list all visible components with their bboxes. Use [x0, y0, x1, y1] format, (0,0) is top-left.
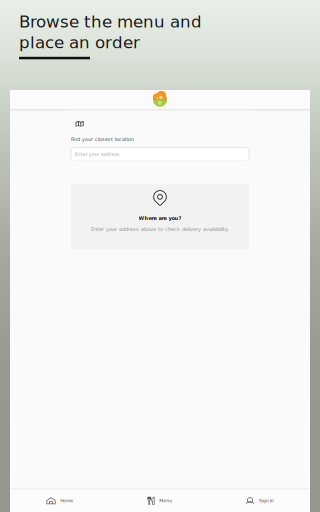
button[interactable]: Sign In	[210, 489, 310, 512]
staticText: Browse the menu and	[19, 12, 202, 31]
staticText: Menu	[159, 498, 172, 503]
staticText: Enter your address	[75, 152, 119, 157]
button[interactable]: Enter your address	[71, 148, 249, 161]
staticText: Where are you?	[138, 215, 181, 221]
staticText: Sign In	[259, 498, 274, 503]
button[interactable]: Home	[10, 489, 110, 512]
staticText: Home	[60, 498, 73, 503]
staticText: Find your closest location	[71, 136, 134, 142]
button[interactable]: Menu	[110, 489, 210, 512]
staticText: place an order	[19, 33, 140, 52]
staticText: Enter your address above to check delive…	[91, 226, 229, 232]
